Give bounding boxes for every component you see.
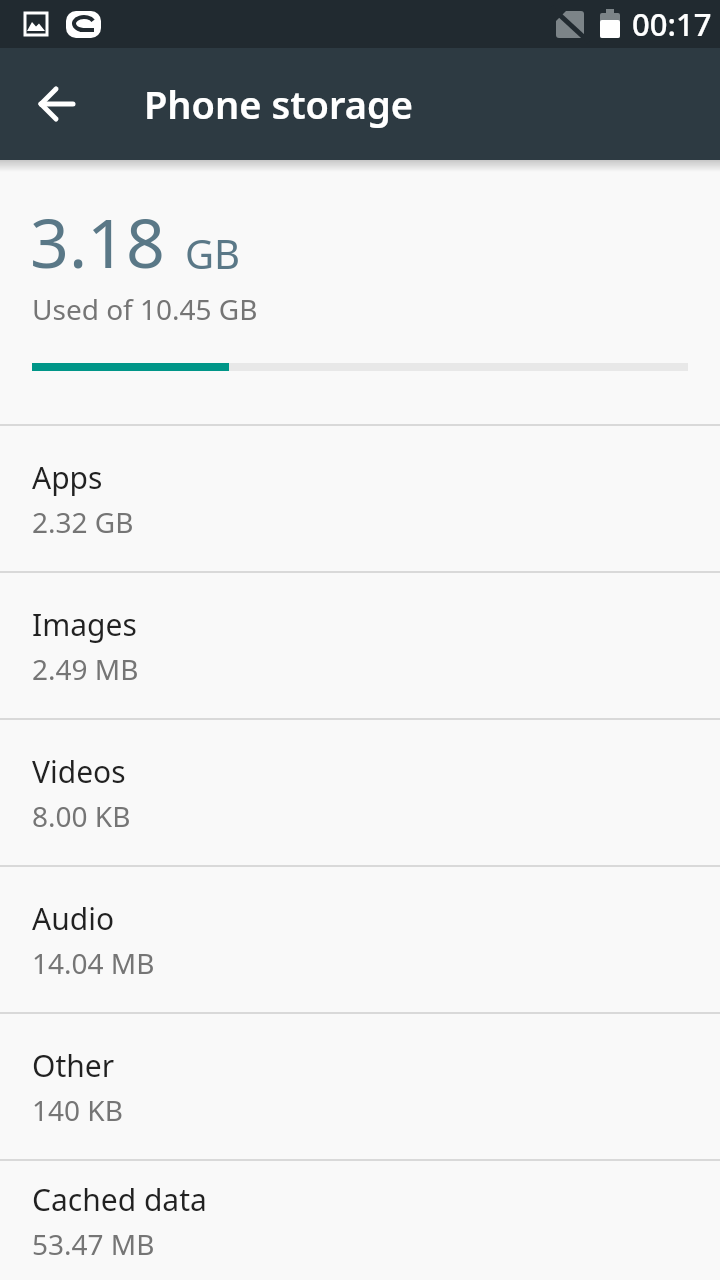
staticText: 8.00 KB (32, 797, 131, 835)
button[interactable]: Images (0, 571, 720, 718)
staticText: GB (185, 226, 241, 280)
staticText: Audio (32, 898, 115, 939)
staticText: 53.47 MB (32, 1225, 155, 1263)
button[interactable]: Cached data (0, 1159, 720, 1280)
button[interactable] (21, 68, 93, 140)
staticText: Apps (32, 457, 103, 498)
button[interactable]: Other (0, 1012, 720, 1159)
staticText: Other (32, 1045, 115, 1086)
staticText: 2.32 GB (32, 503, 134, 541)
button[interactable]: Audio (0, 865, 720, 1012)
staticText: Images (32, 604, 137, 645)
staticText: Phone storage (144, 78, 414, 130)
staticText: Videos (32, 751, 126, 792)
staticText: 140 KB (32, 1091, 123, 1129)
staticText: Used of 10.45 GB (32, 290, 258, 328)
button[interactable]: Apps (0, 424, 720, 571)
staticText: 14.04 MB (32, 944, 155, 982)
staticText: 00:17 (632, 3, 712, 45)
staticText: Cached data (32, 1179, 207, 1220)
button[interactable]: Videos (0, 718, 720, 865)
staticText: 3.18 (30, 195, 165, 288)
staticText: 2.49 MB (32, 650, 139, 688)
